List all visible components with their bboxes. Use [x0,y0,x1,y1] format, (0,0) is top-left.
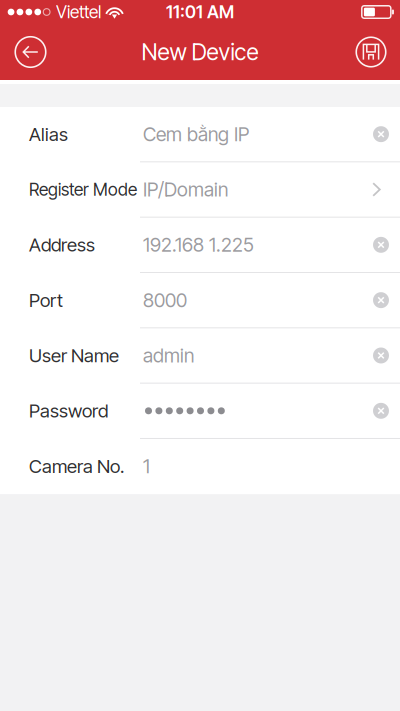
staticText: 11:01 AM [166,1,234,22]
button[interactable]: Clear [362,110,400,158]
button[interactable]: Clear [362,331,400,379]
staticText: Camera No. [29,455,124,477]
button[interactable]: Clear [362,221,400,269]
staticText: Cem bằng IP [143,122,249,146]
staticText: Register Mode [29,179,137,200]
staticText: New Device [141,38,258,66]
staticText: 1 [143,454,150,478]
staticText: Address [29,233,95,256]
button[interactable]: Clear [362,276,400,324]
button[interactable]: Clear [362,387,400,435]
staticText: Alias [29,123,68,145]
staticText: IP/Domain [143,178,228,201]
staticText: 8000 [143,288,187,312]
staticText: Viettel [56,1,101,22]
button[interactable]: Save [347,24,395,80]
button[interactable]: Back [7,24,54,80]
staticText: admin [143,344,194,367]
staticText: 192.168 1.225 [143,233,254,256]
staticText: User Name [29,344,119,367]
staticText: Password [29,399,108,422]
staticText: Port [29,289,63,311]
